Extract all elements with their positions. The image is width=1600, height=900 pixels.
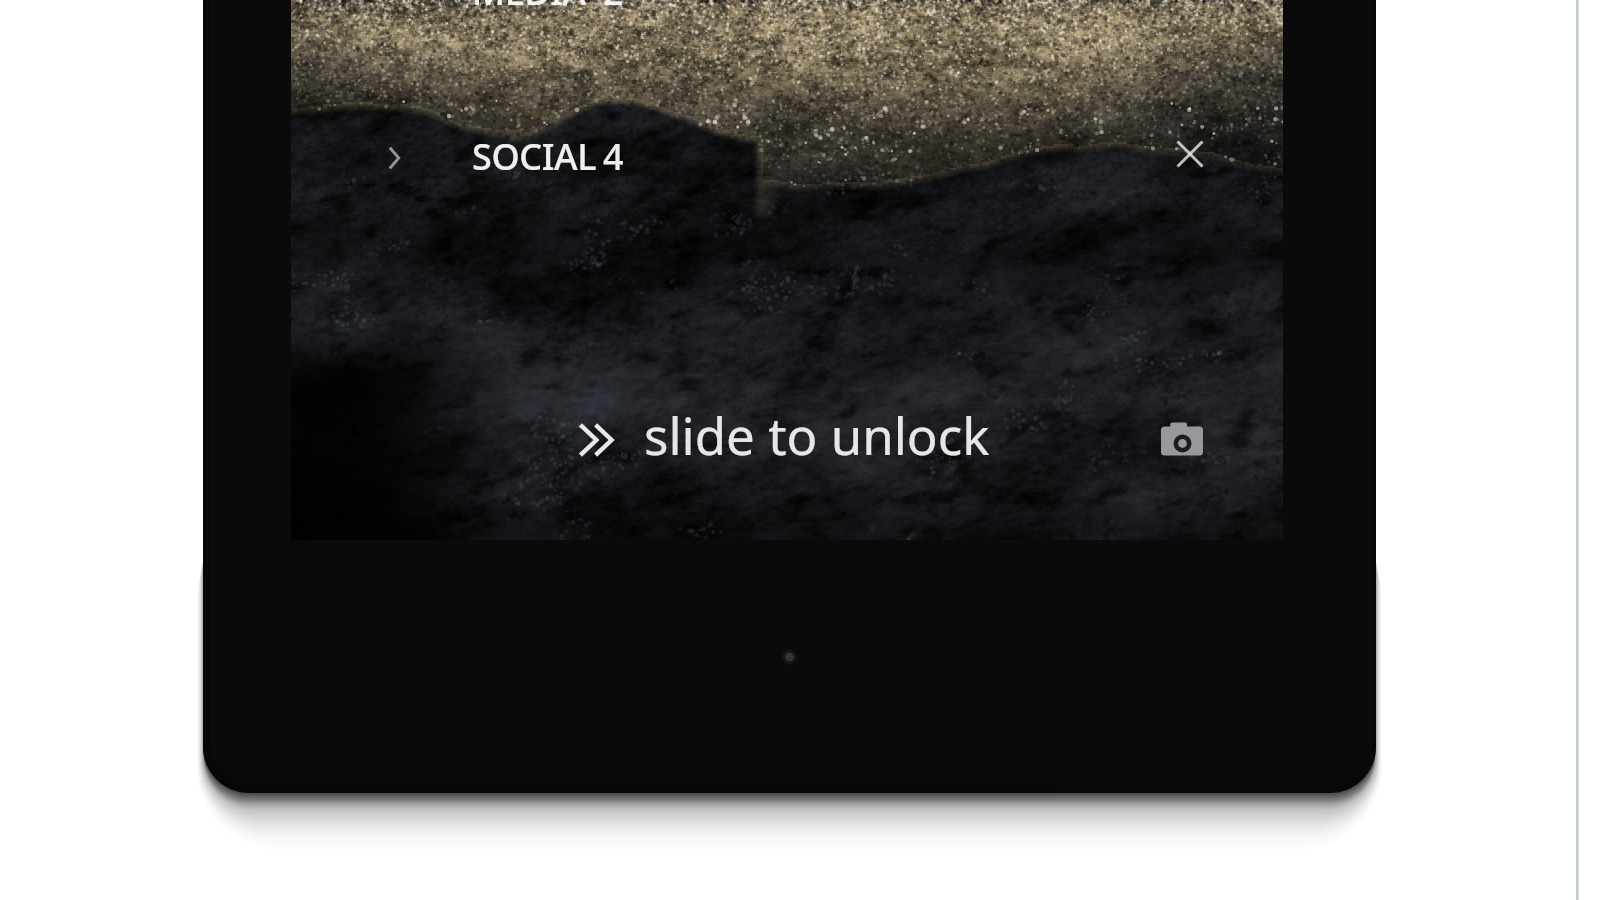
button[interactable]: Dismiss notification	[1160, 126, 1222, 188]
staticText: slide to unlock	[644, 400, 990, 469]
button[interactable]	[360, 122, 780, 186]
staticText: SOCIAL	[472, 132, 597, 181]
staticText: 4	[603, 132, 624, 181]
button[interactable]: Camera	[1148, 407, 1216, 475]
staticText: MEDIA	[472, 0, 586, 16]
button[interactable]	[560, 403, 1010, 477]
staticText: 2	[603, 0, 624, 16]
